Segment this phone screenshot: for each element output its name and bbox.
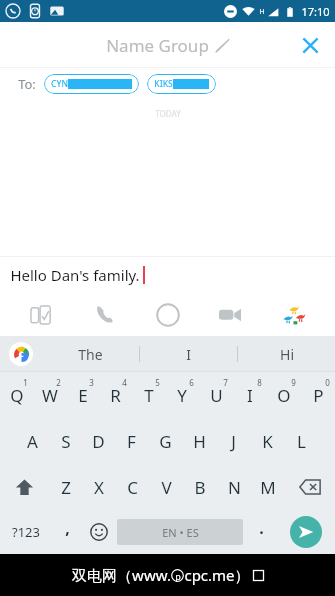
staticText: Y (177, 384, 187, 407)
staticText: 6 (189, 377, 194, 388)
button[interactable]: Record (147, 294, 189, 336)
button[interactable]: Shift (0, 464, 49, 510)
staticText: To: (18, 75, 36, 93)
button[interactable]: N (217, 464, 251, 510)
button[interactable]: ?123 (0, 510, 51, 554)
button[interactable]: U (199, 372, 233, 418)
button[interactable]: Q (0, 372, 33, 418)
staticText: 1 (23, 377, 28, 388)
button[interactable]: Y (165, 372, 199, 418)
staticText: P (313, 384, 324, 407)
button[interactable]: P (301, 372, 335, 418)
button[interactable]: R (99, 372, 132, 418)
staticText: J (231, 430, 236, 453)
button[interactable]: X (82, 464, 115, 510)
staticText: S (61, 430, 71, 453)
staticText: R (110, 384, 121, 407)
staticText: Hi (280, 345, 294, 364)
button[interactable]: I (140, 336, 237, 372)
button[interactable]: B (183, 464, 217, 510)
staticText: L (297, 430, 306, 453)
button[interactable]: H (182, 418, 216, 464)
button[interactable]: Close (293, 28, 327, 62)
button[interactable]: D (82, 418, 115, 464)
button[interactable]: Send (277, 510, 335, 554)
button[interactable]: O (267, 372, 301, 418)
staticText: W (42, 384, 58, 407)
button[interactable]: F (115, 418, 148, 464)
staticText: TODAY (155, 108, 181, 119)
button[interactable]: Z (49, 464, 82, 510)
staticText: Name Group (106, 34, 209, 57)
button[interactable]: C (115, 464, 149, 510)
button[interactable]: KIKS (147, 74, 216, 94)
staticText: T (144, 384, 154, 407)
button[interactable]: W (33, 372, 66, 418)
staticText: 4 (122, 377, 127, 388)
button[interactable]: I (233, 372, 267, 418)
button[interactable]: Hi (238, 336, 335, 372)
staticText: , (65, 517, 70, 539)
button[interactable]: G (148, 418, 182, 464)
button[interactable]: EN • ES (117, 519, 243, 545)
staticText: H (259, 7, 265, 17)
button[interactable]: . (245, 510, 277, 554)
staticText: G (159, 430, 172, 453)
staticText: O (277, 384, 291, 407)
staticText: CYN (51, 78, 68, 90)
staticText: I (186, 345, 191, 364)
staticText: The (78, 345, 103, 364)
staticText: V (161, 476, 172, 499)
staticText: N (228, 476, 241, 499)
staticText: 8 (257, 377, 262, 388)
button[interactable]: The (42, 336, 139, 372)
staticText: D (92, 430, 105, 453)
button[interactable]: Stickers (272, 294, 314, 336)
staticText: U (210, 384, 223, 407)
staticText: 7 (223, 377, 228, 388)
staticText: M (260, 476, 276, 499)
staticText: I (247, 384, 253, 407)
staticText: 5 (155, 377, 160, 388)
button[interactable]: Google (9, 342, 33, 366)
staticText: KIKS (154, 78, 173, 90)
button[interactable]: Name Group (100, 28, 236, 63)
button[interactable]: Emoji (83, 510, 115, 554)
staticText: F (127, 430, 136, 453)
button[interactable]: Video call (209, 294, 251, 336)
staticText: cpc.me） (184, 565, 250, 585)
staticText: ?123 (12, 523, 40, 541)
button[interactable]: K (250, 418, 284, 464)
button[interactable]: E (66, 372, 99, 418)
staticText: 9 (291, 377, 296, 388)
button[interactable]: T (132, 372, 165, 418)
staticText: p (175, 570, 181, 582)
button[interactable]: J (216, 418, 250, 464)
staticText: C (127, 476, 138, 499)
button[interactable]: CYN (44, 74, 139, 94)
staticText: Q (10, 384, 24, 407)
staticText: X (94, 476, 104, 499)
staticText: 3 (89, 377, 94, 388)
button[interactable]: Gallery (21, 294, 63, 336)
button[interactable]: L (284, 418, 318, 464)
staticText: 17:10 (301, 4, 330, 19)
staticText: B (194, 476, 206, 499)
button[interactable]: S (49, 418, 82, 464)
staticText: A (27, 430, 38, 453)
staticText: 0 (325, 377, 330, 388)
staticText: E (78, 384, 88, 407)
staticText: Hello Dan's family. (10, 265, 140, 285)
staticText: 双电网（www. (72, 565, 171, 585)
button[interactable]: M (251, 464, 285, 510)
button[interactable]: A (16, 418, 49, 464)
staticText: . (259, 517, 264, 539)
button[interactable]: V (149, 464, 183, 510)
button[interactable]: , (51, 510, 83, 554)
staticText: Z (61, 476, 71, 499)
staticText: 2 (56, 377, 61, 388)
staticText: EN • ES (162, 525, 199, 540)
staticText: H (193, 430, 206, 453)
button[interactable]: Call (84, 294, 126, 336)
button[interactable]: Backspace (285, 464, 335, 510)
